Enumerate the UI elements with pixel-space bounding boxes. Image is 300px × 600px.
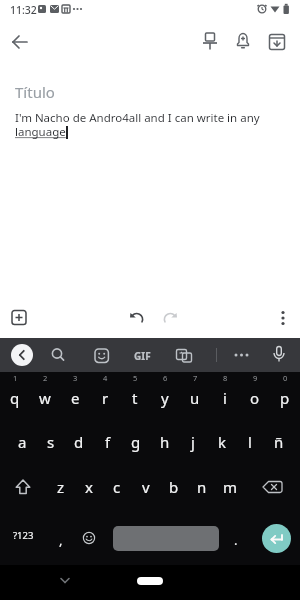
staticText: t	[132, 388, 138, 408]
button[interactable]: x	[75, 473, 103, 501]
button[interactable]	[4, 470, 42, 504]
button[interactable]: z	[47, 473, 75, 501]
staticText: Título	[15, 82, 55, 102]
staticText: o	[250, 388, 260, 408]
button[interactable]: w	[31, 384, 59, 412]
button[interactable]: d	[65, 428, 93, 456]
staticText: i	[223, 388, 227, 408]
button[interactable]	[262, 524, 291, 553]
button[interactable]	[265, 341, 293, 369]
button[interactable]: ?123	[6, 521, 40, 549]
button[interactable]: n	[188, 473, 216, 501]
staticText: l	[248, 432, 252, 452]
button[interactable]	[137, 577, 163, 585]
staticText: s	[47, 432, 55, 452]
staticText: e	[71, 388, 80, 408]
button[interactable]: ,	[47, 526, 75, 554]
staticText: f	[105, 432, 111, 452]
button[interactable]	[11, 344, 33, 366]
button[interactable]: g	[122, 428, 150, 456]
button[interactable]	[88, 341, 116, 369]
button[interactable]: r	[91, 384, 119, 412]
button[interactable]: q	[1, 384, 29, 412]
staticText: r	[102, 388, 109, 408]
staticText: v	[142, 477, 150, 497]
staticText: language	[15, 124, 66, 140]
staticText: 1	[13, 373, 18, 383]
button[interactable]: j	[179, 428, 207, 456]
button[interactable]	[6, 28, 34, 56]
button[interactable]: y	[151, 384, 179, 412]
button[interactable]	[253, 470, 291, 504]
button[interactable]	[123, 304, 151, 332]
button[interactable]: o	[241, 384, 269, 412]
staticText: ñ	[274, 432, 284, 452]
staticText: 9	[253, 373, 258, 383]
button[interactable]: m	[216, 473, 244, 501]
button[interactable]: a	[8, 428, 36, 456]
staticText: 0	[283, 373, 288, 383]
staticText: a	[18, 432, 27, 452]
staticText: c	[113, 477, 121, 497]
button[interactable]	[196, 28, 224, 56]
staticText: h	[160, 432, 170, 452]
button[interactable]	[51, 566, 79, 594]
button[interactable]: t	[121, 384, 149, 412]
staticText: g	[131, 432, 141, 452]
button[interactable]	[156, 304, 184, 332]
button[interactable]: .	[222, 526, 250, 554]
button[interactable]	[44, 341, 72, 369]
staticText: k	[218, 432, 227, 452]
staticText: n	[197, 477, 207, 497]
button[interactable]: h	[151, 428, 179, 456]
button[interactable]: i	[211, 384, 239, 412]
staticText: q	[10, 388, 20, 408]
staticText: 3	[73, 373, 78, 383]
staticText: 5	[133, 373, 138, 383]
button[interactable]: u	[181, 384, 209, 412]
staticText: y	[161, 388, 169, 408]
staticText: d	[74, 432, 84, 452]
staticText: j	[191, 432, 195, 452]
button[interactable]: f	[94, 428, 122, 456]
staticText: w	[39, 388, 51, 408]
button[interactable]	[229, 28, 257, 56]
button[interactable]: GIF	[134, 349, 151, 363]
staticText: 7	[193, 373, 198, 383]
staticText: z	[57, 477, 65, 497]
button[interactable]	[228, 341, 256, 369]
button[interactable]	[113, 526, 219, 551]
button[interactable]	[269, 304, 297, 332]
button[interactable]: s	[37, 428, 65, 456]
staticText: u	[190, 388, 200, 408]
button[interactable]: k	[208, 428, 236, 456]
button[interactable]: l	[236, 428, 264, 456]
staticText: .	[234, 531, 238, 549]
button[interactable]	[5, 304, 33, 332]
staticText: ?123	[13, 529, 34, 542]
staticText: b	[169, 477, 179, 497]
staticText: I'm Nacho de Andro4all and I can write i…	[15, 110, 260, 126]
staticText: ,	[59, 531, 63, 549]
staticText: 4	[103, 373, 108, 383]
button[interactable]	[263, 28, 291, 56]
staticText: 11:32	[10, 3, 37, 17]
staticText: 6	[163, 373, 168, 383]
staticText: 8	[223, 373, 228, 383]
button[interactable]: p	[271, 384, 299, 412]
button[interactable]	[170, 341, 198, 369]
button[interactable]	[75, 524, 103, 552]
button[interactable]: c	[103, 473, 131, 501]
button[interactable]: ñ	[265, 428, 293, 456]
staticText: 2	[43, 373, 48, 383]
button[interactable]: b	[160, 473, 188, 501]
button[interactable]: v	[132, 473, 160, 501]
staticText: m	[223, 477, 238, 497]
staticText: p	[280, 388, 290, 408]
button[interactable]: e	[61, 384, 89, 412]
staticText: x	[85, 477, 93, 497]
